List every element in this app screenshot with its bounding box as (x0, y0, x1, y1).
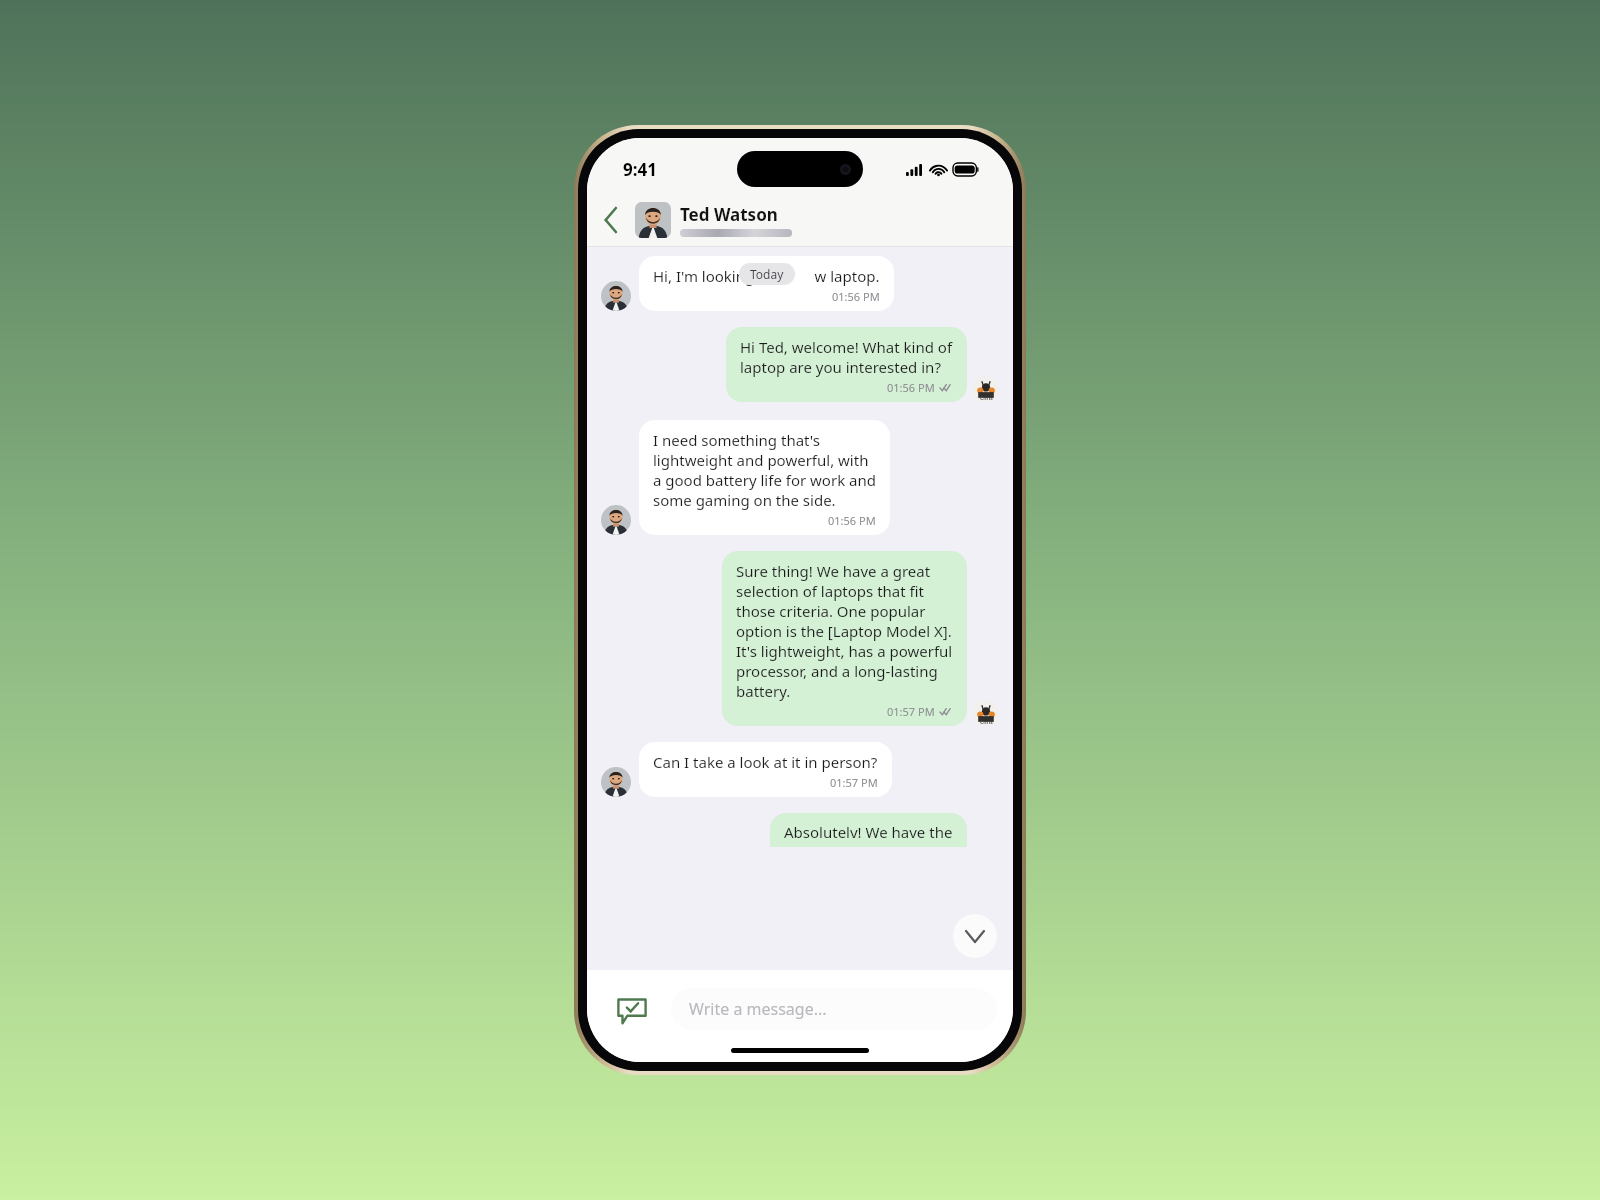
staticText: those criteria. One popular (736, 601, 926, 621)
staticText: lightweight and powerful, with (653, 450, 869, 470)
button[interactable]: Quick replies (601, 978, 663, 1040)
button[interactable]: Write a message... (671, 988, 997, 1030)
button[interactable]: Back (587, 194, 635, 246)
button[interactable]: Can I take a look at it in person? (639, 742, 892, 797)
staticText: a good battery life for work and (653, 470, 876, 490)
staticText: 01:56 PM (832, 289, 880, 304)
staticText: Hi, I'm looking w laptop. (653, 266, 880, 286)
staticText: selection of laptops that fit (736, 581, 925, 601)
staticText: laptop are you interested in? (740, 357, 941, 377)
staticText: Ted Watson (680, 203, 778, 226)
staticText: Chris (980, 719, 993, 726)
staticText: Hi Ted, welcome! What kind of (740, 337, 953, 357)
button[interactable]: Hi Ted, welcome! What kind of (726, 327, 967, 402)
staticText: processor, and a long-lasting (736, 661, 938, 681)
staticText: Sure thing! We have a great (736, 561, 931, 581)
staticText: Write a message... (689, 998, 827, 1020)
staticText: 01:56 PM (828, 513, 876, 528)
staticText: option is the [Laptop Model X]. (736, 621, 952, 641)
button[interactable]: I need something that's (639, 420, 890, 535)
staticText: battery. (736, 681, 791, 701)
button[interactable]: Scroll to bottom (953, 914, 997, 958)
staticText: Chris (980, 395, 993, 402)
staticText: 01:57 PM (887, 704, 935, 719)
staticText: 9:41 (623, 158, 657, 181)
staticText: 01:56 PM (887, 380, 935, 395)
staticText: 01:57 PM (830, 775, 878, 790)
staticText: It's lightweight, has a powerful (736, 641, 953, 661)
button[interactable]: Absolutely! We have the (770, 813, 967, 847)
staticText: some gaming on the side. (653, 490, 836, 510)
staticText: I need something that's (653, 430, 820, 450)
staticText: Can I take a look at it in person? (653, 752, 878, 772)
button[interactable]: Back (587, 194, 1013, 246)
staticText: Today (750, 266, 784, 282)
button[interactable]: Hi, I'm looking w laptop. (639, 256, 894, 311)
staticText: Absolutely! We have the (784, 822, 953, 838)
button[interactable]: Sure thing! We have a great (722, 551, 967, 726)
